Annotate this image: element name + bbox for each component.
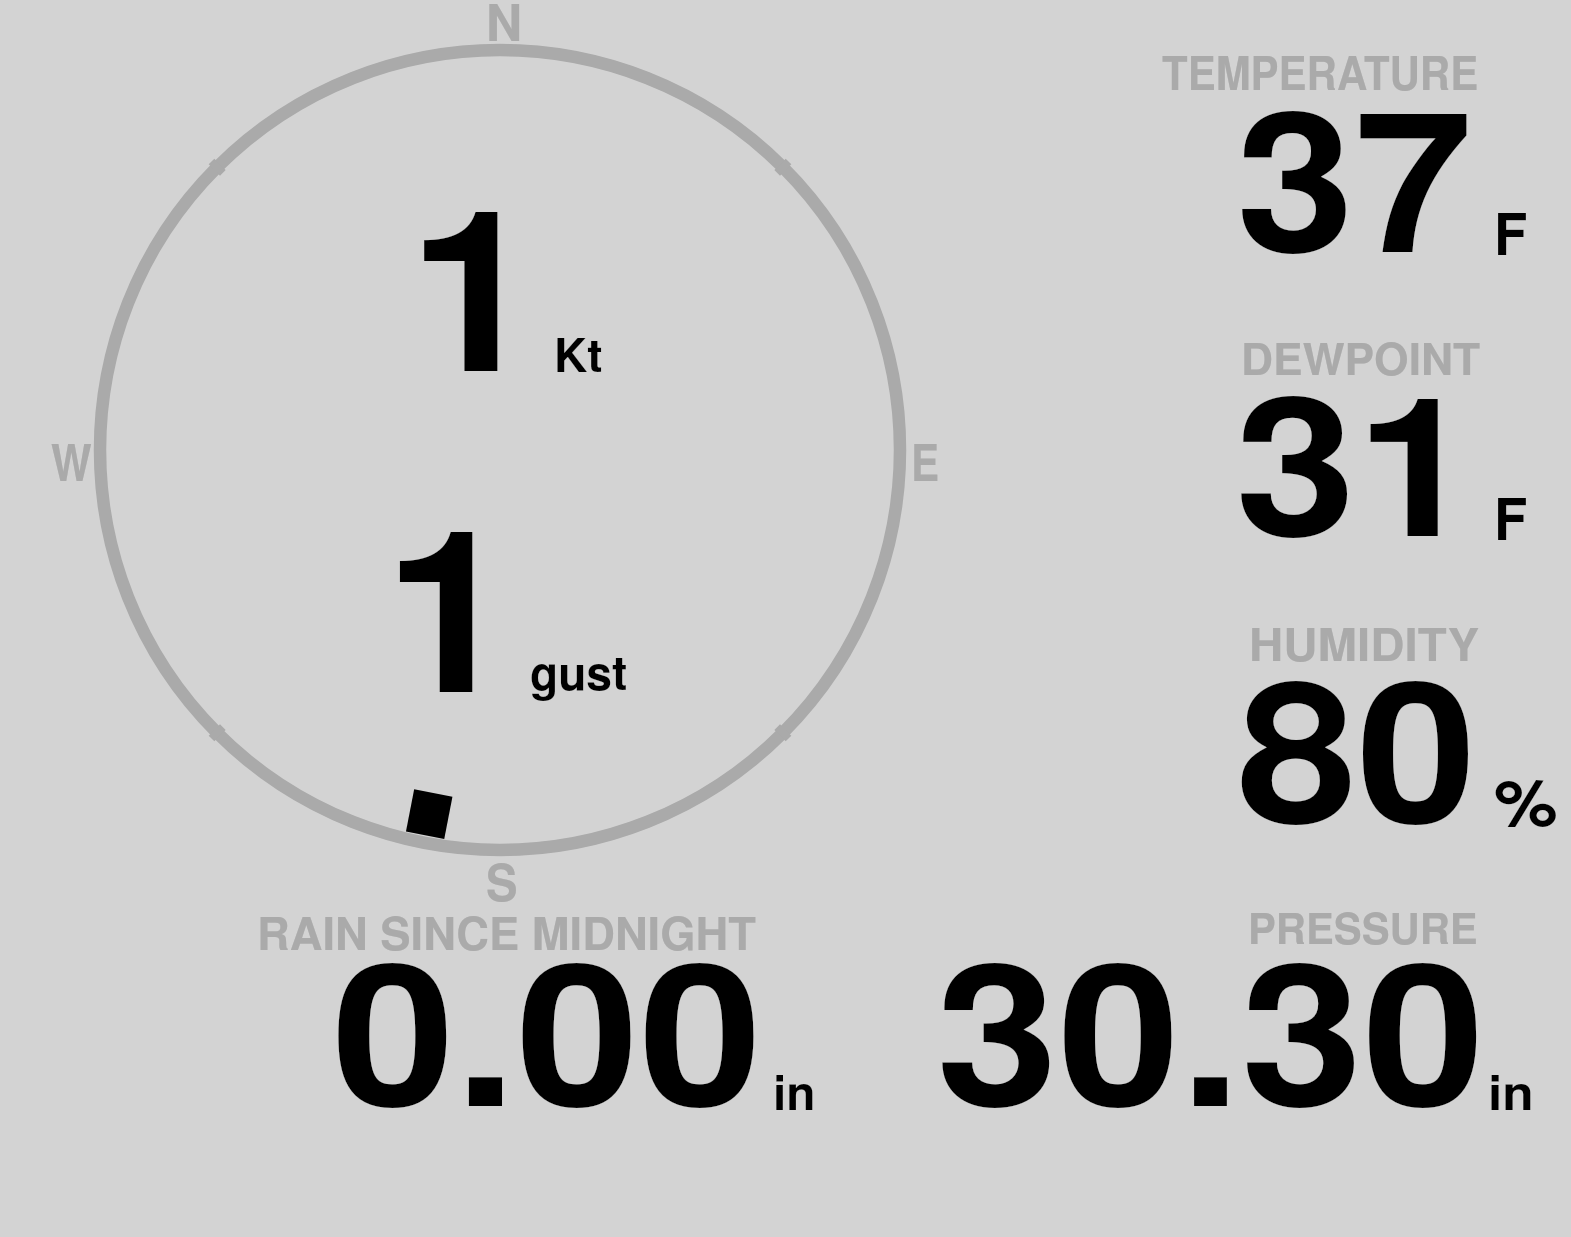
staticText: 0.00: [332, 884, 762, 1166]
staticText: 31: [1235, 319, 1477, 595]
staticText: PRESSURE: [1248, 896, 1478, 957]
staticText: 80: [1237, 602, 1477, 883]
button[interactable]: Rain since midnight 0.00 in: [240, 900, 840, 1125]
staticText: TEMPERATURE: [1162, 38, 1479, 104]
button[interactable]: Dewpoint 31 F: [1150, 330, 1560, 555]
staticText: Kt: [554, 320, 603, 386]
staticText: S: [486, 843, 518, 916]
button[interactable]: Temperature 37 F: [1150, 40, 1560, 270]
staticText: %: [1494, 754, 1558, 846]
button[interactable]: Wind dial, 1 knot, gusting 1, from 191 d…: [60, 10, 950, 900]
staticText: 30.30: [936, 884, 1485, 1166]
staticText: E: [911, 423, 940, 496]
staticText: in: [773, 1057, 816, 1124]
staticText: F: [1494, 475, 1528, 558]
staticText: N: [486, 0, 523, 56]
staticText: in: [1488, 1057, 1534, 1124]
button[interactable]: Humidity 80 percent: [1150, 615, 1560, 840]
staticText: HUMIDITY: [1249, 610, 1480, 674]
staticText: 1: [384, 438, 514, 761]
staticText: 1: [408, 118, 540, 440]
button[interactable]: Pressure 30.30 in: [900, 900, 1545, 1125]
staticText: DEWPOINT: [1241, 325, 1481, 388]
staticText: 37: [1236, 33, 1472, 312]
staticText: gust: [530, 637, 628, 704]
staticText: F: [1494, 190, 1528, 273]
staticText: RAIN SINCE MIDNIGHT: [257, 899, 756, 964]
staticText: W: [51, 423, 92, 496]
